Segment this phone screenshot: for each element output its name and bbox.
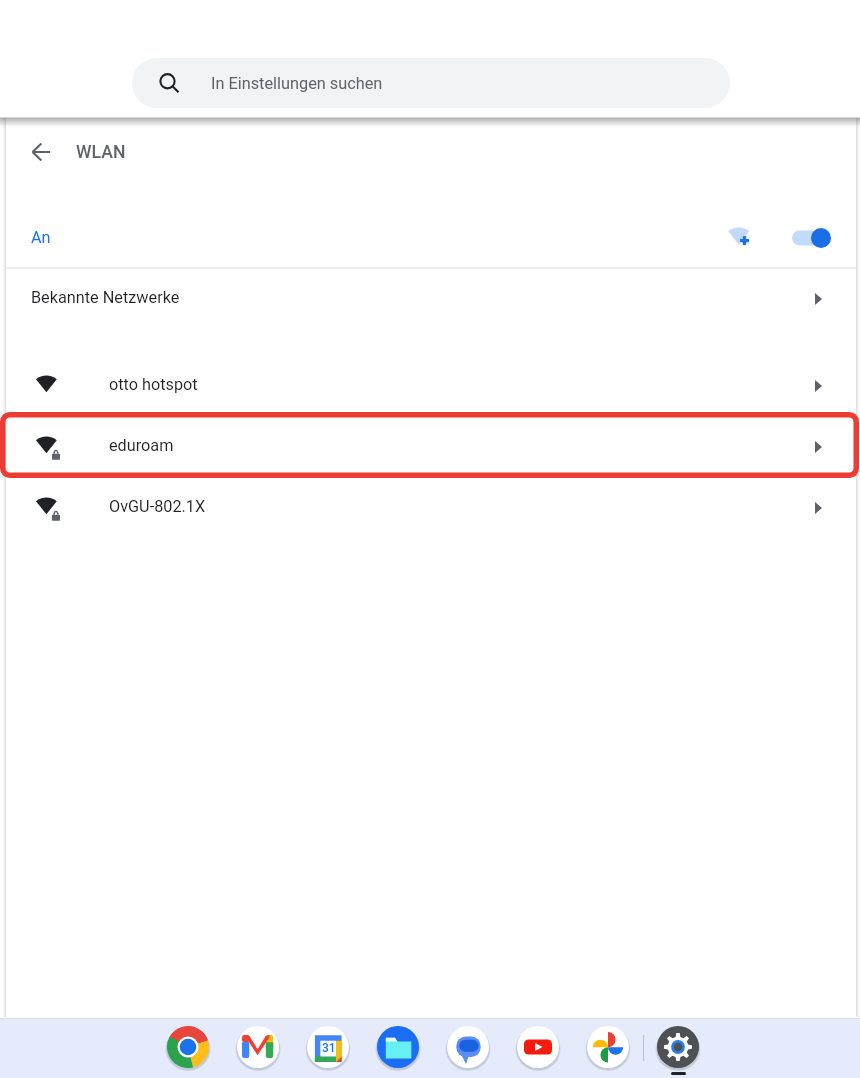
button[interactable]: Photos [584, 1023, 632, 1071]
staticText: OvGU-802.1X [109, 497, 206, 516]
button[interactable]: Chrome [164, 1023, 212, 1071]
button[interactable]: Messages [444, 1023, 492, 1071]
staticText: Bekannte Netzwerke [31, 288, 180, 307]
button[interactable]: Files [374, 1023, 422, 1071]
button[interactable]: otto hotspot [6, 354, 856, 415]
button[interactable]: WLAN on [784, 220, 838, 256]
button[interactable]: Settings [654, 1023, 702, 1071]
staticText: otto hotspot [109, 375, 198, 394]
button[interactable]: Back [21, 132, 61, 172]
button[interactable]: In Einstellungen suchen [132, 58, 730, 108]
button[interactable]: An [6, 206, 856, 268]
staticText: 31 [322, 1041, 336, 1055]
staticText: An [31, 228, 51, 247]
staticText: eduroam [109, 436, 174, 455]
staticText: WLAN [76, 142, 126, 163]
button[interactable]: Add network [723, 221, 759, 257]
button[interactable]: YouTube [514, 1023, 562, 1071]
button[interactable]: Gmail [234, 1023, 282, 1071]
button[interactable]: Bekannte Netzwerke [6, 268, 856, 326]
button[interactable]: OvGU-802.1X [6, 476, 856, 537]
staticText: In Einstellungen suchen [211, 74, 383, 93]
button[interactable]: eduroam [6, 415, 856, 476]
button[interactable]: Calendar [304, 1023, 352, 1071]
